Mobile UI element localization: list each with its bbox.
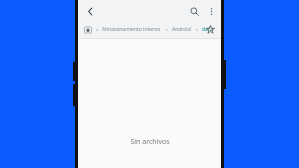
button[interactable]: Android	[171, 26, 192, 33]
button[interactable]: Almacenamiento interno	[101, 26, 162, 33]
button[interactable]: Add to favorites	[204, 23, 217, 36]
staticText: Android	[172, 26, 191, 33]
staticText: Sin archivos	[130, 137, 170, 147]
staticText: Almacenamiento interno	[102, 26, 161, 33]
staticText: data	[202, 26, 213, 33]
button[interactable]: data	[201, 26, 214, 33]
button[interactable]: Search	[186, 3, 202, 19]
button[interactable]: Back	[82, 3, 98, 19]
button[interactable]: Root storage	[83, 25, 92, 34]
button[interactable]: More options	[203, 3, 219, 19]
